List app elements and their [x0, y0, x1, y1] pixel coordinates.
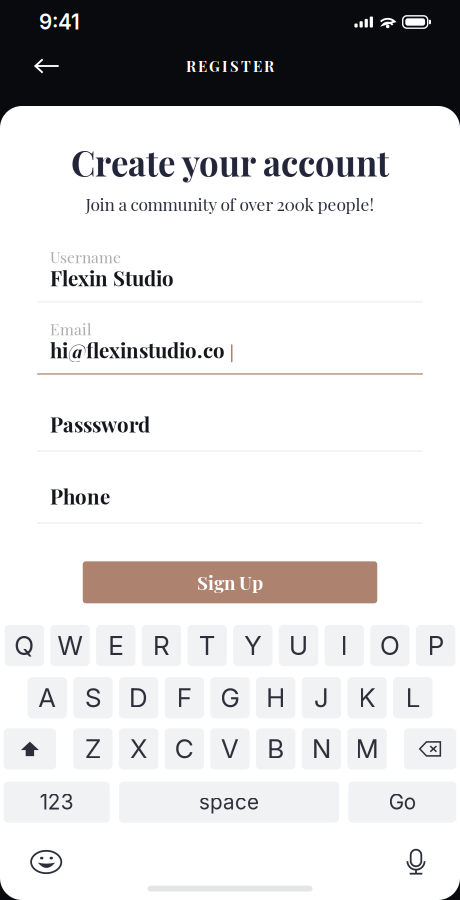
staticText: K: [359, 682, 376, 713]
staticText: V: [221, 733, 239, 765]
button[interactable]: Delete: [404, 728, 456, 769]
staticText: Y: [244, 630, 261, 661]
staticText: 123: [40, 790, 74, 815]
staticText: H: [266, 682, 285, 713]
staticText: N: [312, 733, 331, 765]
button[interactable]: Go: [348, 781, 456, 823]
button[interactable]: Emoji: [24, 841, 68, 875]
staticText: O: [380, 630, 400, 661]
staticText: C: [175, 733, 194, 765]
staticText: L: [406, 682, 420, 713]
staticText: hi@flexinstudio.co: [50, 336, 225, 363]
staticText: R: [153, 630, 170, 661]
button[interactable]: L: [393, 677, 432, 718]
staticText: D: [129, 682, 148, 713]
button[interactable]: C: [165, 728, 204, 769]
staticText: Q: [14, 630, 34, 661]
staticText: 9:41: [39, 9, 80, 34]
button[interactable]: G: [210, 677, 250, 718]
staticText: Sign Up: [197, 570, 263, 595]
button[interactable]: A: [27, 677, 67, 718]
staticText: G: [220, 682, 239, 713]
staticText: E: [108, 630, 123, 661]
staticText: Email: [50, 318, 91, 339]
button[interactable]: Sign Up: [83, 561, 377, 603]
button[interactable]: space: [119, 781, 339, 823]
button[interactable]: P: [416, 625, 455, 666]
staticText: Z: [85, 733, 101, 765]
button[interactable]: Dictate: [394, 841, 438, 875]
button[interactable]: M: [347, 728, 387, 769]
button[interactable]: Shift: [4, 728, 56, 769]
button[interactable]: Y: [233, 625, 273, 666]
staticText: Passsword: [50, 410, 150, 437]
button[interactable]: R: [142, 625, 181, 666]
staticText: Create your account: [71, 139, 389, 185]
staticText: B: [267, 733, 284, 765]
staticText: M: [356, 733, 379, 765]
staticText: A: [38, 682, 56, 713]
button[interactable]: S: [73, 677, 113, 718]
button[interactable]: D: [119, 677, 158, 718]
staticText: W: [58, 630, 83, 661]
button[interactable]: Back: [25, 48, 69, 84]
staticText: Flexin Studio: [50, 264, 174, 291]
staticText: Username: [50, 246, 121, 267]
button[interactable]: T: [187, 625, 227, 666]
staticText: J: [314, 682, 329, 713]
staticText: I: [341, 630, 348, 661]
button[interactable]: H: [256, 677, 295, 718]
staticText: U: [289, 630, 308, 661]
button[interactable]: K: [347, 677, 387, 718]
button[interactable]: N: [302, 728, 341, 769]
button[interactable]: X: [119, 728, 158, 769]
button[interactable]: B: [256, 728, 295, 769]
button[interactable]: W: [50, 625, 90, 666]
button[interactable]: F: [165, 677, 204, 718]
button[interactable]: U: [279, 625, 318, 666]
button[interactable]: E: [96, 625, 135, 666]
button[interactable]: V: [210, 728, 250, 769]
staticText: S: [85, 682, 101, 713]
button[interactable]: I: [325, 625, 364, 666]
staticText: Join a community of over 200k people!: [85, 192, 374, 215]
staticText: space: [199, 790, 259, 815]
button[interactable]: O: [370, 625, 410, 666]
staticText: REGISTER: [186, 56, 274, 76]
staticText: T: [199, 630, 216, 661]
button[interactable]: Q: [5, 625, 44, 666]
staticText: P: [428, 630, 444, 661]
button[interactable]: J: [302, 677, 341, 718]
button[interactable]: 123: [4, 781, 110, 823]
staticText: X: [130, 733, 147, 765]
staticText: F: [177, 682, 192, 713]
staticText: Phone: [50, 482, 110, 509]
staticText: Go: [389, 790, 416, 815]
button[interactable]: Z: [73, 728, 113, 769]
